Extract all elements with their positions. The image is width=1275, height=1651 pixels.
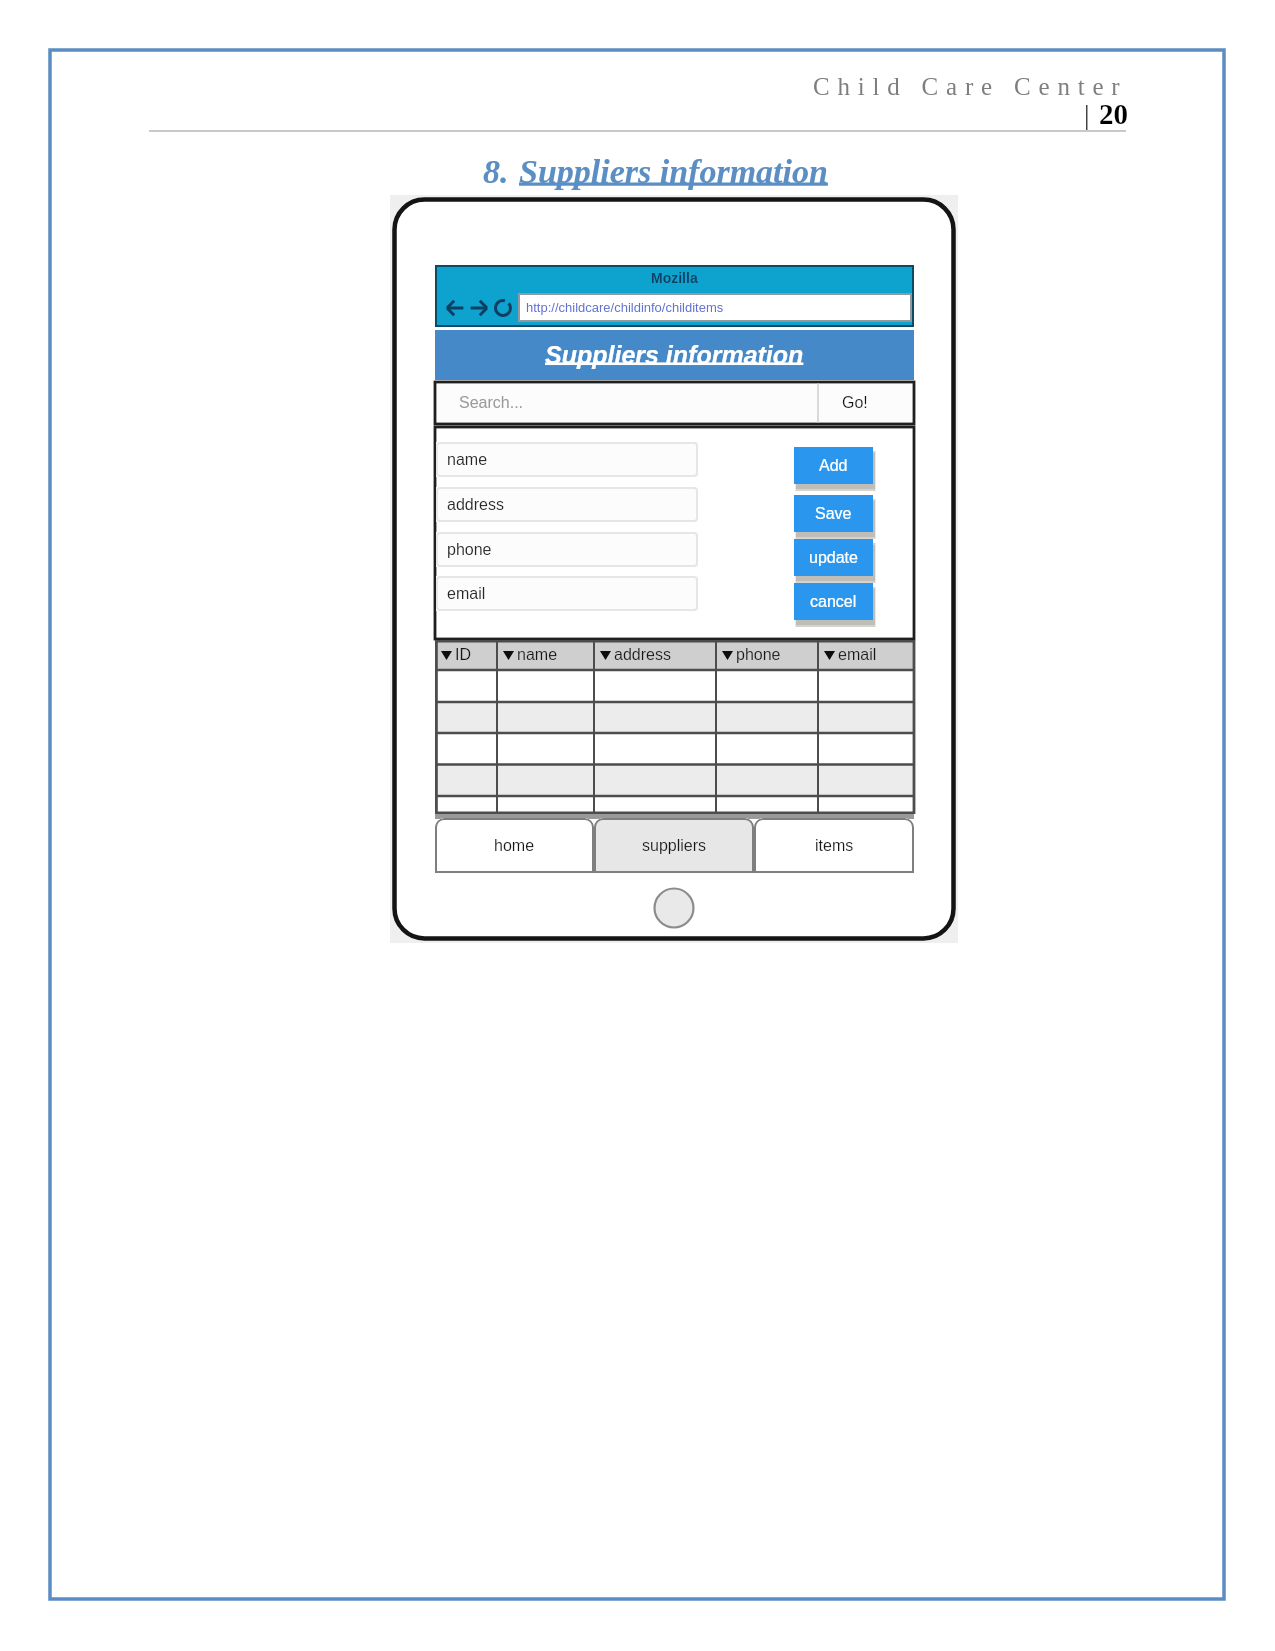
staticText: Suppliers information xyxy=(519,153,828,191)
staticText: Search... xyxy=(459,394,524,412)
button[interactable]: Save xyxy=(794,495,873,532)
staticText: Save xyxy=(815,505,852,523)
button[interactable]: Back xyxy=(445,298,465,318)
staticText: name xyxy=(447,451,488,469)
staticText: address xyxy=(447,496,504,514)
staticText: Suppliers information xyxy=(545,341,804,369)
staticText: email xyxy=(838,646,877,664)
staticText: | xyxy=(1084,99,1090,130)
staticText: items xyxy=(815,837,854,855)
button[interactable]: ID xyxy=(435,640,497,670)
button[interactable]: update xyxy=(794,539,873,576)
button[interactable]: name xyxy=(497,640,594,670)
button[interactable]: phone xyxy=(716,640,818,670)
button[interactable]: http://childcare/childinfo/childitems xyxy=(518,293,912,322)
staticText: Add xyxy=(819,457,848,475)
staticText: phone xyxy=(736,646,781,664)
staticText: name xyxy=(517,646,558,664)
staticText: suppliers xyxy=(642,837,707,855)
button[interactable]: email xyxy=(818,640,914,670)
button[interactable]: address xyxy=(436,487,698,522)
button[interactable]: cancel xyxy=(794,583,873,620)
staticText: Child Care Center xyxy=(813,73,1128,101)
staticText: home xyxy=(494,837,535,855)
staticText: phone xyxy=(447,541,492,559)
staticText: cancel xyxy=(810,593,857,611)
button[interactable]: Forward xyxy=(469,298,489,318)
staticText: ID xyxy=(455,646,471,664)
button[interactable]: Go! xyxy=(818,382,914,424)
button[interactable]: home xyxy=(435,818,594,873)
button[interactable]: Reload xyxy=(493,298,513,318)
button[interactable]: name xyxy=(436,442,698,477)
staticText: 8. xyxy=(483,153,509,191)
button[interactable]: Add xyxy=(794,447,873,484)
staticText: Mozilla xyxy=(651,270,698,286)
staticText: update xyxy=(809,549,858,567)
button[interactable]: email xyxy=(436,576,698,611)
staticText: email xyxy=(447,585,486,603)
button[interactable]: phone xyxy=(436,532,698,567)
button[interactable]: suppliers xyxy=(594,818,754,873)
staticText: Go! xyxy=(842,394,868,412)
button[interactable]: address xyxy=(594,640,716,670)
staticText: address xyxy=(614,646,671,664)
staticText: 20 xyxy=(1099,98,1128,130)
button[interactable]: items xyxy=(754,818,914,873)
staticText: http://childcare/childinfo/childitems xyxy=(526,300,724,315)
